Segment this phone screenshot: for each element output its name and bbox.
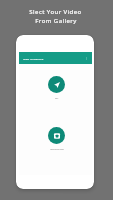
staticText: From Gallery	[35, 17, 77, 25]
button[interactable]: More options	[83, 55, 89, 61]
staticText: Compressed Videos	[50, 148, 64, 150]
staticText: Start	[55, 97, 59, 99]
button[interactable]: Compressed videos	[48, 127, 65, 144]
button[interactable]: Video Compressor	[19, 52, 92, 64]
staticText: Slect Your Video	[29, 8, 82, 16]
staticText: Video Compressor	[23, 57, 44, 60]
button[interactable]: Select video	[48, 76, 65, 93]
